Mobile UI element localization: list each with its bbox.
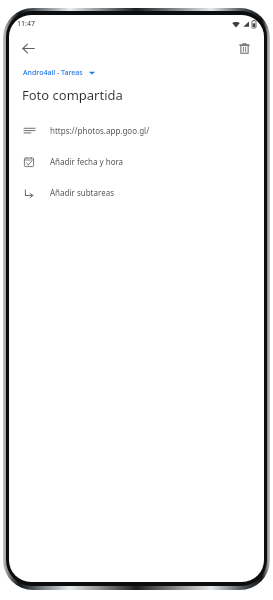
- staticText: Añadir fecha y hora: [50, 156, 124, 167]
- button[interactable]: Foto compartida: [9, 85, 264, 105]
- button[interactable]: Andro4all - Tareas: [22, 66, 96, 80]
- button[interactable]: https://photos.app.goo.gl/: [9, 115, 264, 146]
- staticText: 11:47: [17, 19, 35, 29]
- button[interactable]: Delete: [230, 34, 258, 62]
- button[interactable]: Back: [14, 34, 42, 62]
- staticText: https://photos.app.goo.gl/: [50, 125, 150, 136]
- staticText: Añadir subtareas: [50, 187, 114, 198]
- button[interactable]: Añadir fecha y hora: [9, 146, 264, 177]
- button[interactable]: Añadir subtareas: [9, 177, 264, 208]
- staticText: Andro4all - Tareas: [23, 68, 83, 78]
- staticText: Foto compartida: [22, 86, 123, 104]
